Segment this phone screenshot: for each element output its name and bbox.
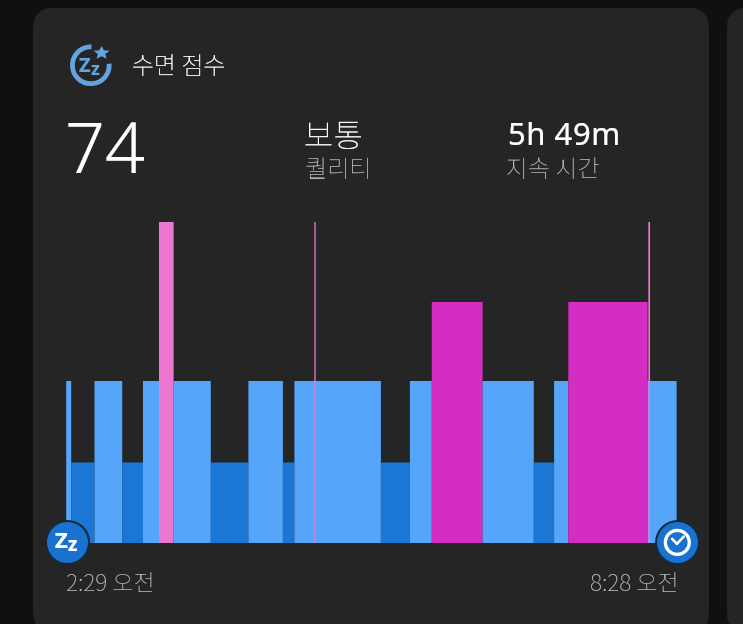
staticText: 퀄리티 bbox=[305, 149, 372, 184]
staticText: 2:29 오전 bbox=[66, 564, 155, 597]
staticText: Z bbox=[55, 524, 68, 554]
staticText: z bbox=[91, 56, 100, 81]
staticText: 지속 시간 bbox=[506, 149, 600, 184]
staticText: 5h 49m bbox=[508, 112, 621, 154]
staticText: 74 bbox=[65, 98, 145, 193]
staticText: 보통 bbox=[304, 110, 363, 156]
button[interactable]: Sleep start bbox=[47, 522, 88, 563]
staticText: 8:28 오전 bbox=[590, 564, 679, 597]
staticText: z bbox=[68, 531, 78, 557]
button[interactable] bbox=[33, 8, 709, 624]
staticText: Z bbox=[79, 51, 91, 78]
button[interactable]: Wake time bbox=[657, 522, 698, 563]
staticText: 수면 점수 bbox=[132, 46, 226, 81]
other: Sleep score bbox=[66, 40, 116, 90]
